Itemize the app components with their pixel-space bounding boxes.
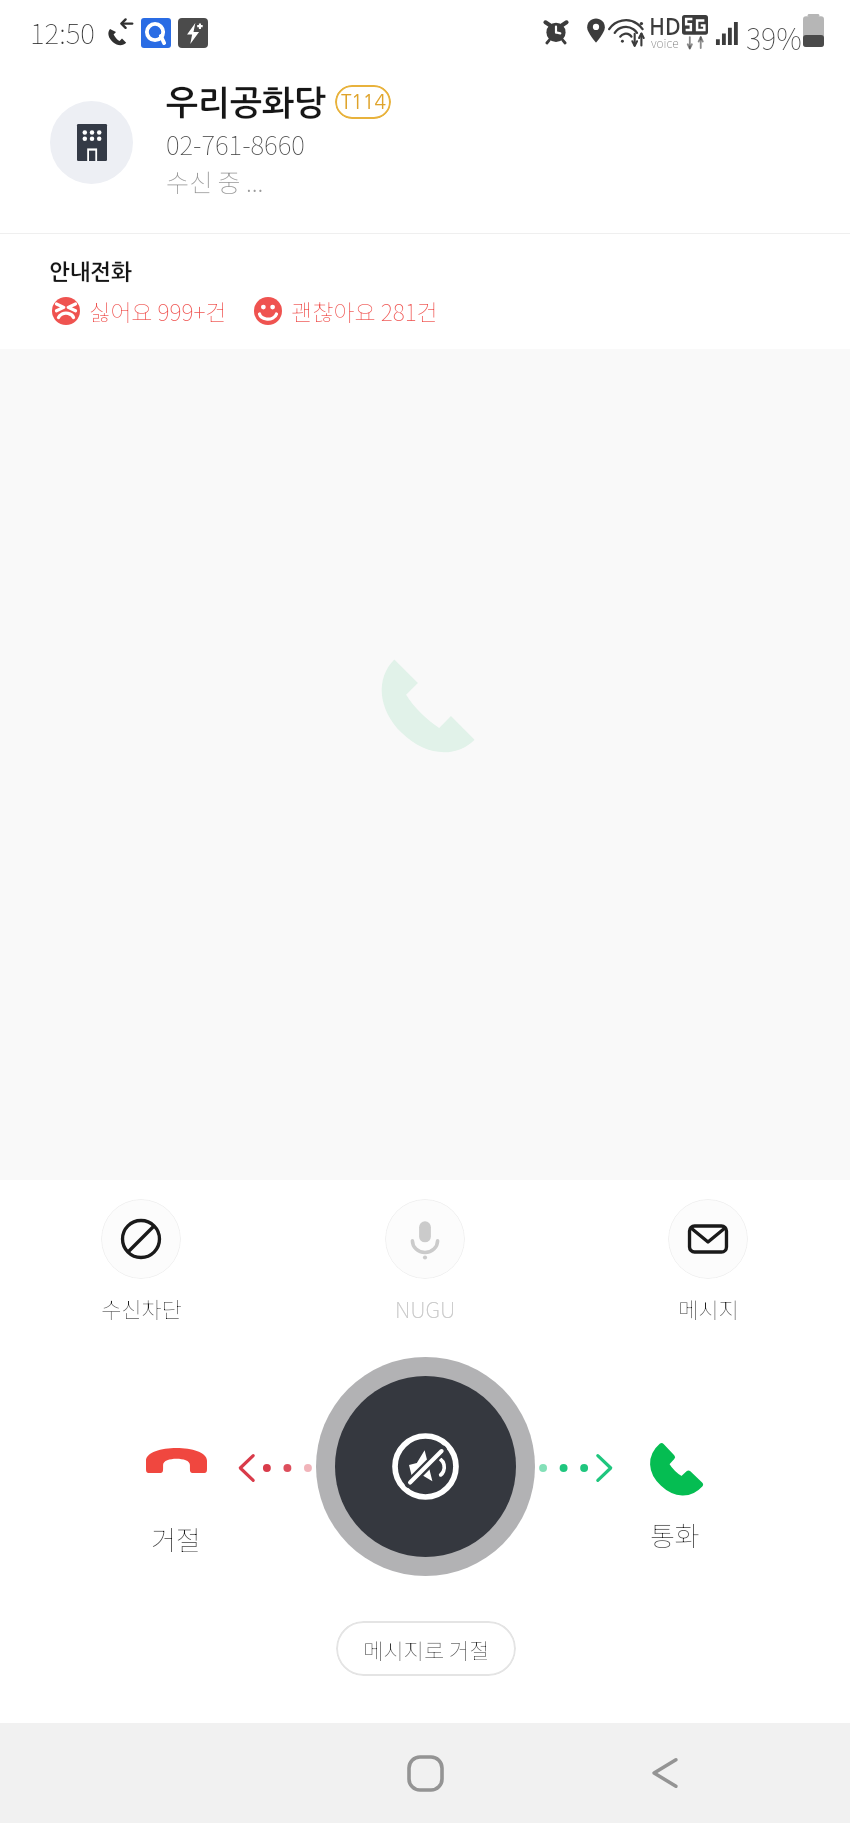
button[interactable]: 통화 [625, 1442, 725, 1554]
staticText: 02-761-8660 [166, 125, 305, 163]
staticText: 우리공화당 [166, 86, 326, 120]
button[interactable]: NUGU [365, 1199, 485, 1324]
staticText: 통화 [650, 1515, 700, 1554]
button[interactable]: Home [390, 1738, 460, 1808]
staticText: HD [649, 16, 681, 38]
staticText: voice [651, 34, 679, 51]
button[interactable]: 메시지 [648, 1199, 768, 1324]
staticText: 괜찮아요 281건 [291, 294, 438, 327]
staticText: 싫어요 999+건 [89, 294, 227, 327]
button[interactable]: 싫어요 999+건 [52, 294, 227, 327]
staticText: NUGU [395, 1292, 456, 1324]
button[interactable]: 거절 [126, 1446, 226, 1558]
button[interactable]: 수신차단 [81, 1199, 201, 1324]
staticText: 수신차단 [101, 1292, 182, 1324]
button[interactable]: 괜찮아요 281건 [254, 294, 438, 327]
staticText: 메시지 [678, 1292, 739, 1324]
button[interactable]: Back [630, 1738, 700, 1808]
button[interactable]: Mute ringtone [316, 1357, 535, 1576]
staticText: 39% [746, 16, 802, 58]
staticText: 수신 중 ... [166, 163, 264, 199]
staticText: T114 [341, 93, 386, 112]
staticText: 12:50 [30, 12, 95, 53]
staticText: 안내전화 [49, 261, 132, 283]
staticText: 거절 [151, 1519, 201, 1558]
staticText: 메시지로 거절 [363, 1633, 490, 1665]
button[interactable]: 메시지로 거절 [336, 1621, 516, 1676]
